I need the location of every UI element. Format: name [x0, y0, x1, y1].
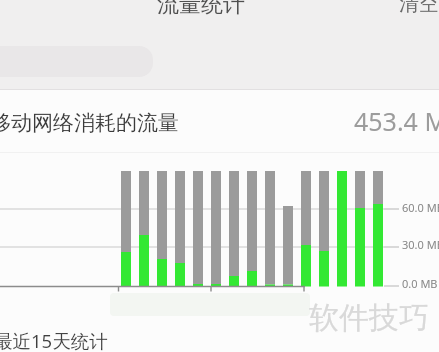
staticText: 移动网络消耗的流量: [0, 110, 179, 136]
staticText: 软件技巧: [309, 299, 429, 335]
staticText: 最近15天统计: [0, 328, 108, 352]
staticText: 60.0 MB: [402, 200, 439, 214]
staticText: 流量统计: [157, 0, 245, 19]
staticText: 30.0 MB: [402, 237, 439, 251]
staticText: 清空: [399, 0, 439, 16]
button[interactable]: 清空: [399, 0, 439, 16]
button[interactable]: 移动网络消耗的流量: [0, 106, 439, 140]
staticText: 0.0 MB: [402, 276, 438, 290]
staticText: 453.4 MB: [354, 104, 439, 138]
